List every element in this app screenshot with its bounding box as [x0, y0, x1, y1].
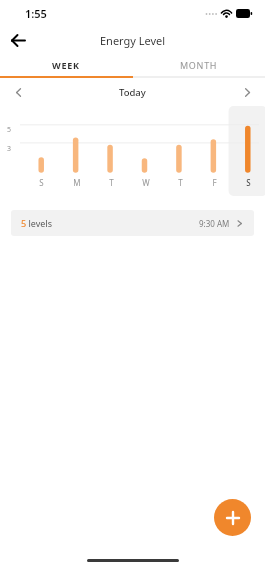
- staticText: S: [246, 177, 251, 188]
- staticText: Energy Level: [100, 33, 166, 48]
- staticText: M: [73, 177, 81, 188]
- button[interactable]: Add entry: [214, 499, 251, 536]
- staticText: 3: [7, 144, 12, 154]
- staticText: MONTH: [180, 59, 218, 71]
- staticText: T: [178, 177, 183, 188]
- button[interactable]: MONTH: [132, 54, 265, 76]
- staticText: 5: [7, 125, 12, 135]
- staticText: Today: [119, 86, 146, 99]
- staticText: W: [142, 177, 150, 188]
- button[interactable]: WEEK: [0, 54, 132, 76]
- button[interactable]: Previous week: [8, 82, 28, 102]
- staticText: T: [109, 177, 114, 188]
- staticText: WEEK: [52, 59, 80, 71]
- staticText: 9:30 AM: [199, 218, 230, 229]
- button[interactable]: Back: [6, 28, 30, 52]
- button[interactable]: Next week: [237, 82, 257, 102]
- staticText: F: [212, 177, 217, 188]
- button[interactable]: 5 levels: [11, 210, 254, 236]
- staticText: 1:55: [25, 6, 47, 21]
- staticText: 5 levels: [21, 217, 52, 229]
- staticText: S: [39, 177, 44, 188]
